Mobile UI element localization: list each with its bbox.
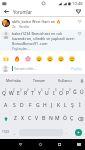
- button[interactable]: 2: [8, 86, 15, 99]
- staticText: T: [31, 90, 34, 97]
- staticText: Ü: [80, 89, 84, 96]
- button[interactable]: 7: [43, 86, 50, 99]
- button[interactable]: Beğen: [76, 31, 83, 38]
- button[interactable]: İ: [76, 99, 83, 112]
- button[interactable]: Ş: [69, 99, 76, 112]
- button[interactable]: abfb_baleo West Ham arı 🔥: [0, 18, 85, 29]
- button[interactable]: M: [54, 112, 61, 125]
- staticText: ?123: [2, 130, 9, 134]
- staticText: D: [20, 102, 24, 109]
- staticText: 7: [48, 88, 50, 92]
- button[interactable]: A: [2, 99, 10, 112]
- button[interactable]: Ğ: [71, 86, 78, 99]
- button[interactable]: Paylaş: [72, 7, 85, 16]
- button[interactable]: Klavyeyi gizle: [74, 140, 83, 149]
- staticText: W: [9, 90, 14, 97]
- button[interactable]: Merhaba: [0, 75, 26, 86]
- button[interactable]: Emoji: [34, 54, 43, 63]
- staticText: Yorum ekle...: [14, 66, 37, 71]
- staticText: S: [13, 102, 16, 109]
- button[interactable]: Kullanıcı: [52, 75, 78, 86]
- button[interactable]: K: [55, 99, 62, 112]
- button[interactable]: F: [26, 99, 34, 112]
- staticText: Kullanıcı: [58, 78, 72, 83]
- staticText: E: [17, 90, 20, 97]
- staticText: P: [66, 90, 70, 97]
- button[interactable]: Tamam: [26, 75, 52, 86]
- staticText: Ş: [71, 102, 74, 109]
- button[interactable]: 4: [22, 86, 29, 99]
- staticText: N: [49, 115, 53, 122]
- staticText: I: [53, 90, 55, 97]
- staticText: Tamam: [33, 78, 46, 83]
- staticText: 0: [69, 88, 71, 92]
- staticText: A: [4, 102, 8, 109]
- button[interactable]: Sesli giriş: [78, 75, 85, 86]
- button[interactable]: Shift: [0, 112, 11, 125]
- button[interactable]: Emoji: [67, 54, 76, 63]
- staticText: 5: [34, 88, 36, 92]
- staticText: 3s Yanıtla: [12, 24, 30, 28]
- staticText: 4: [27, 88, 29, 92]
- button[interactable]: babet1234 Bonushost en cok kazandıran, s…: [0, 30, 85, 51]
- staticText: 1: [5, 88, 7, 92]
- staticText: R: [24, 90, 28, 97]
- button[interactable]: Sil: [75, 112, 85, 125]
- button[interactable]: L: [62, 99, 69, 112]
- staticText: Ö: [63, 115, 67, 122]
- button[interactable]: ?123: [0, 125, 11, 139]
- staticText: Paylaşılan...: [12, 46, 31, 50]
- button[interactable]: Gönder: [71, 125, 85, 139]
- staticText: .: [66, 130, 68, 135]
- staticText: Merhaba: [6, 78, 21, 83]
- button[interactable]: Ü: [78, 86, 85, 99]
- button[interactable]: Z: [11, 112, 19, 125]
- button[interactable]: Emoji: [23, 54, 32, 63]
- button[interactable]: X: [19, 112, 26, 125]
- button[interactable]: B: [40, 112, 47, 125]
- staticText: V: [35, 115, 39, 122]
- button[interactable]: Emoji: [1, 54, 10, 63]
- button[interactable]: Ana ekran: [36, 140, 45, 149]
- staticText: L: [64, 102, 67, 109]
- button[interactable]: 6: [36, 86, 43, 99]
- button[interactable]: Geri: [0, 7, 13, 16]
- button[interactable]: J: [48, 99, 55, 112]
- button[interactable]: 1: [0, 86, 8, 99]
- button[interactable]: 0: [64, 86, 71, 99]
- button[interactable]: D: [18, 99, 26, 112]
- staticText: 10:48: [72, 1, 83, 7]
- button[interactable]: 5: [29, 86, 36, 99]
- staticText: B: [42, 115, 46, 122]
- staticText: 6: [41, 88, 43, 92]
- button[interactable]: Beğen: [76, 19, 83, 26]
- staticText: abfb_baleo West Ham arı 🔥: [12, 19, 61, 24]
- button[interactable]: H: [41, 99, 48, 112]
- button[interactable]: V: [33, 112, 40, 125]
- staticText: H: [43, 102, 47, 109]
- button[interactable]: Ç: [68, 112, 75, 125]
- staticText: Y: [38, 90, 41, 97]
- button[interactable]: Emoji: [45, 54, 54, 63]
- button[interactable]: Geri: [16, 140, 25, 149]
- staticText: Ç: [70, 115, 74, 122]
- button[interactable]: 3: [15, 86, 22, 99]
- button[interactable]: C: [26, 112, 33, 125]
- button[interactable]: Ö: [61, 112, 68, 125]
- button[interactable]: Emoji: [56, 54, 65, 63]
- button[interactable]: 8: [50, 86, 57, 99]
- button[interactable]: 9: [57, 86, 64, 99]
- button[interactable]: G: [34, 99, 41, 112]
- staticText: Z: [14, 115, 17, 122]
- button[interactable]: S: [10, 99, 18, 112]
- button[interactable]: Son kullanılanlar: [55, 140, 64, 149]
- staticText: G: [36, 102, 40, 109]
- button[interactable]: Paylaş: [70, 64, 83, 73]
- staticText: 9: [62, 88, 64, 92]
- button[interactable]: Emoji: [12, 54, 21, 63]
- button[interactable]: N: [47, 112, 54, 125]
- button[interactable]: Virgül: [11, 125, 19, 139]
- staticText: 8: [55, 88, 57, 92]
